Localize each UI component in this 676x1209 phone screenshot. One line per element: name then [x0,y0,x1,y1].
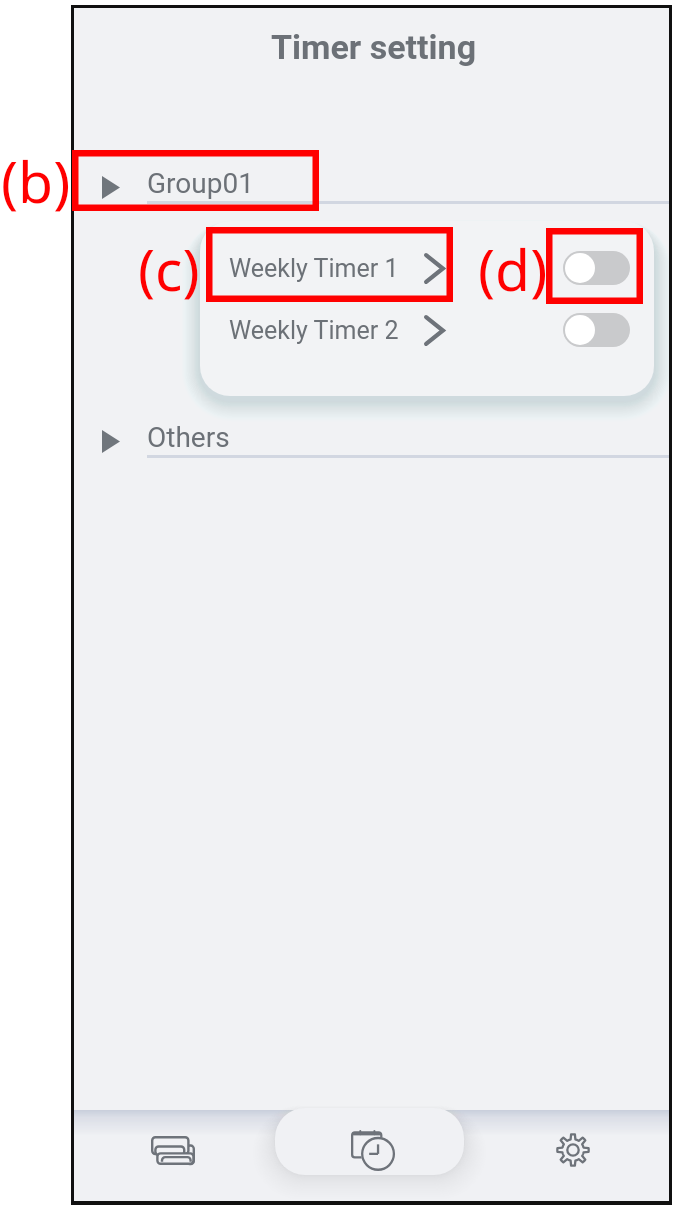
button[interactable]: Timer setting [74,8,669,96]
button[interactable]: Toggle timer [563,251,630,285]
staticText: Timer setting [271,27,477,67]
staticText: Weekly Timer 2 [229,316,399,345]
staticText: (d) [478,230,548,308]
button[interactable]: Weekly Timer 2 [200,307,455,354]
button[interactable]: Group01 [74,167,669,207]
button[interactable]: Print [74,1102,273,1201]
staticText: Weekly Timer 1 [229,254,399,283]
button[interactable]: Timer schedule [273,1102,471,1201]
button[interactable]: Weekly Timer 1 [200,245,455,292]
button[interactable]: Toggle timer [563,313,630,347]
staticText: (c) [138,230,200,308]
button[interactable]: Others [74,421,669,461]
staticText: Group01 [147,167,254,200]
staticText: Others [147,421,230,454]
staticText: (b) [1,142,71,220]
button[interactable]: Settings [471,1102,669,1201]
